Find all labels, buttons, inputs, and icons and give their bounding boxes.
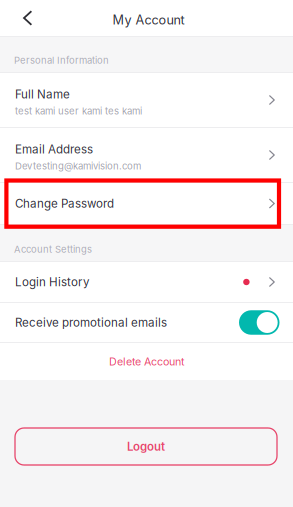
button[interactable]: Back bbox=[15, 0, 61, 36]
staticText: My Account bbox=[112, 12, 184, 28]
staticText: Devtesting@kamivision.com bbox=[15, 160, 141, 172]
staticText: Account Settings bbox=[14, 243, 92, 255]
button[interactable]: Logout bbox=[15, 428, 277, 465]
staticText: Delete Account bbox=[109, 355, 184, 368]
staticText: Full Name bbox=[15, 87, 70, 101]
button[interactable]: Full Name bbox=[0, 73, 293, 127]
button[interactable]: Receive promotional emails bbox=[239, 310, 279, 335]
staticText: Change Password bbox=[15, 196, 114, 210]
button[interactable]: Delete Account bbox=[0, 343, 293, 380]
staticText: Email Address bbox=[15, 142, 93, 156]
staticText: test kami user kami tes kami bbox=[15, 105, 142, 117]
staticText: Receive promotional emails bbox=[15, 315, 167, 329]
staticText: Personal Information bbox=[14, 54, 109, 66]
staticText: Logout bbox=[127, 440, 165, 453]
button[interactable]: Change Password bbox=[0, 183, 293, 224]
button[interactable]: Login History bbox=[0, 262, 293, 302]
staticText: Login History bbox=[15, 275, 90, 289]
button[interactable]: Email Address bbox=[0, 128, 293, 182]
